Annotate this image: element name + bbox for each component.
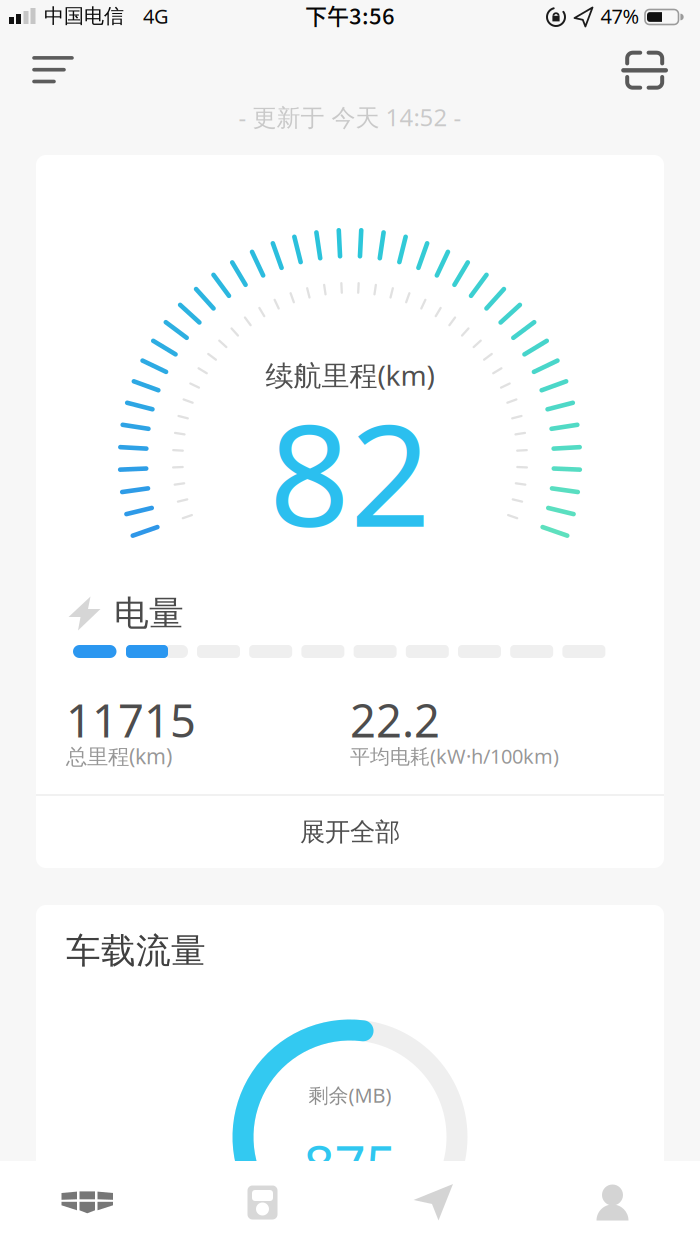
button[interactable]: 展开全部 <box>36 796 664 867</box>
staticText: 82 <box>269 378 431 566</box>
button[interactable]: Profile <box>525 1161 700 1244</box>
staticText: 中国电信 <box>44 4 124 28</box>
staticText: 展开全部 <box>300 816 400 847</box>
button[interactable]: Home <box>0 1161 175 1244</box>
staticText: 11715 <box>66 690 196 750</box>
staticText: 4G <box>143 3 169 29</box>
staticText: 电量 <box>114 592 184 635</box>
staticText: 平均电耗(kW·h/100km) <box>350 743 559 769</box>
staticText: 车载流量 <box>66 930 206 972</box>
staticText: 875 <box>303 1128 396 1200</box>
staticText: 22.2 <box>350 690 440 750</box>
button[interactable]: Menu <box>32 56 76 84</box>
button[interactable]: Scan <box>622 50 667 90</box>
button[interactable]: Location <box>346 1161 521 1244</box>
staticText: - 更新于 今天 14:52 - <box>238 101 461 133</box>
staticText: 下午3:56 <box>305 0 395 31</box>
button[interactable]: Charging <box>175 1161 350 1244</box>
staticText: 总里程(km) <box>66 742 172 770</box>
staticText: 剩余(MB) <box>308 1082 391 1108</box>
staticText: 续航里程(km) <box>265 356 434 394</box>
staticText: 47% <box>600 3 639 29</box>
